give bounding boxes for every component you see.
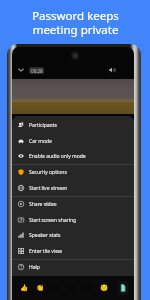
staticText: 👍 <box>20 284 29 292</box>
button[interactable]: Security options <box>12 164 134 180</box>
staticText: Password keeps meeting private <box>32 8 119 37</box>
staticText: Start live stream <box>29 185 68 192</box>
button[interactable]: Share video <box>12 196 134 212</box>
button[interactable]: Start screen sharing <box>12 212 134 228</box>
staticText: Help <box>29 264 40 271</box>
button[interactable]: Enable audio only mode <box>12 148 134 164</box>
button[interactable]: Start live stream <box>12 180 134 196</box>
staticText: 👏 <box>36 284 45 292</box>
staticText: Car mode <box>29 138 52 145</box>
button[interactable]: Speaker stats <box>12 227 134 243</box>
staticText: Participants <box>29 122 57 129</box>
button[interactable]: Notes <box>118 281 128 295</box>
button[interactable]: Enter tile view <box>12 243 134 259</box>
staticText: Share video <box>29 201 57 208</box>
button[interactable]: Collapse <box>15 64 27 76</box>
button[interactable]: Reaction <box>32 280 48 296</box>
button[interactable]: Speaker <box>106 64 118 76</box>
staticText: Start screen sharing <box>29 217 77 224</box>
button[interactable]: 00:28 <box>29 67 44 74</box>
button[interactable]: Car mode <box>12 133 134 149</box>
staticText: Security options <box>29 169 67 176</box>
staticText: Enable audio only mode <box>29 153 86 160</box>
staticText: Enter tile view <box>29 248 62 255</box>
staticText: 00:28 <box>31 68 43 74</box>
button[interactable]: Help <box>12 259 134 275</box>
button[interactable]: Reaction <box>96 280 112 296</box>
staticText: 🙂 <box>100 284 109 292</box>
button[interactable]: Reaction <box>16 280 32 296</box>
button[interactable]: Participants <box>12 117 134 133</box>
staticText: Speaker stats <box>29 232 61 239</box>
